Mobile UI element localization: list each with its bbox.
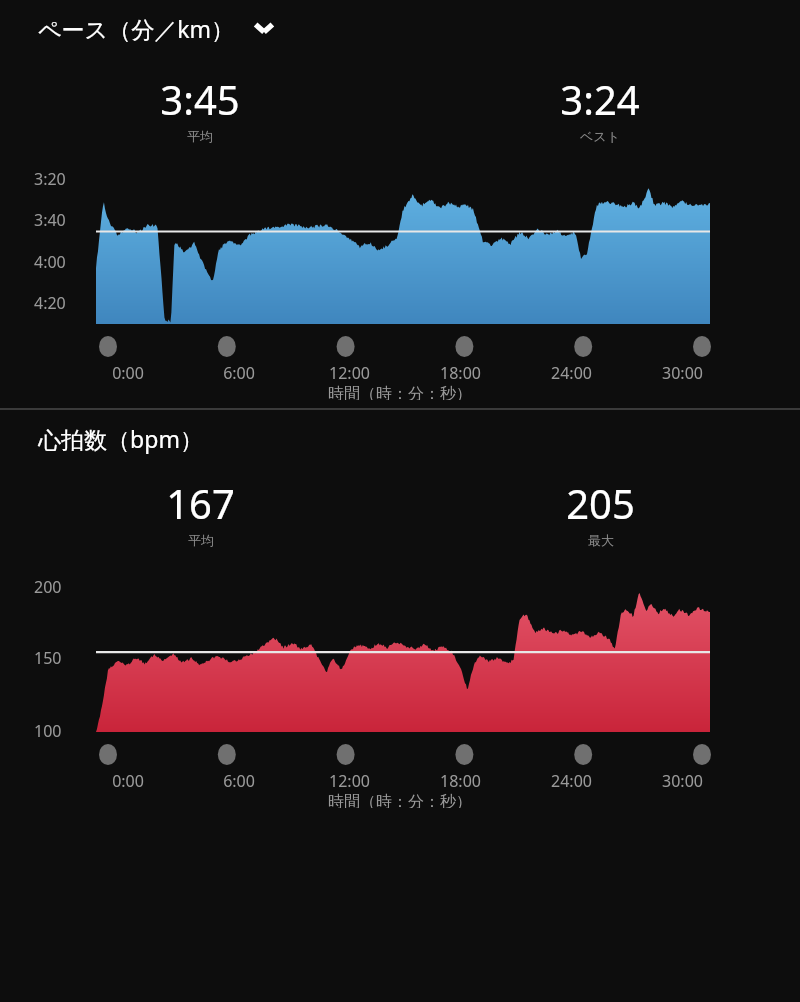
staticText: 6:00 [223,362,255,384]
staticText: 30:00 [662,770,703,792]
staticText: 最大 [588,532,614,548]
staticText: 200 [34,576,62,598]
staticText: 167 [166,476,235,530]
staticText: 0:00 [112,362,144,384]
staticText: 時間（時：分：秒） [328,384,472,400]
staticText: 3:20 [34,168,66,190]
staticText: 150 [34,647,62,669]
staticText: ベスト [580,128,620,144]
button[interactable]: ペース（分／km） [0,0,800,56]
staticText: 18:00 [440,362,481,384]
staticText: 3:45 [160,72,240,126]
button[interactable]: 心拍数（bpm） [0,410,800,466]
other: Expand pace options [250,14,278,42]
staticText: 4:00 [34,251,66,273]
staticText: 6:00 [223,770,255,792]
staticText: 30:00 [662,362,703,384]
staticText: 3:24 [560,72,640,126]
staticText: 24:00 [551,770,592,792]
staticText: 平均 [187,128,213,144]
staticText: ペース（分／km） [38,13,234,44]
staticText: 心拍数（bpm） [38,423,203,454]
staticText: 12:00 [329,362,370,384]
staticText: 0:00 [112,770,144,792]
staticText: 100 [34,720,62,742]
staticText: 時間（時：分：秒） [328,792,472,808]
staticText: 205 [566,476,635,530]
staticText: 4:20 [34,292,66,314]
staticText: 12:00 [329,770,370,792]
staticText: 18:00 [440,770,481,792]
staticText: 24:00 [551,362,592,384]
staticText: 3:40 [34,209,66,231]
staticText: 平均 [188,532,214,548]
